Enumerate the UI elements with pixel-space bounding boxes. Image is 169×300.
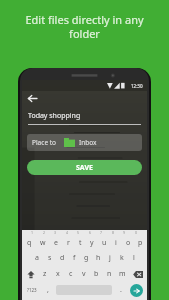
button[interactable]: o bbox=[122, 235, 134, 250]
button[interactable]: , bbox=[41, 282, 54, 298]
button[interactable]: l bbox=[128, 250, 140, 266]
staticText: i bbox=[115, 238, 117, 248]
button[interactable]: u bbox=[98, 235, 110, 250]
staticText: f bbox=[73, 253, 76, 263]
button[interactable]: . bbox=[114, 282, 127, 298]
staticText: Edit files directly in any folder bbox=[14, 12, 155, 41]
staticText: 3 bbox=[54, 230, 57, 235]
button[interactable]: a bbox=[30, 250, 43, 266]
staticText: v bbox=[82, 269, 86, 279]
button[interactable]: r bbox=[62, 235, 74, 250]
button[interactable]: ?123 bbox=[23, 282, 41, 298]
staticText: z bbox=[43, 269, 47, 279]
button[interactable]: b bbox=[90, 266, 103, 282]
staticText: a bbox=[35, 253, 39, 263]
staticText: 12:30 bbox=[131, 83, 143, 89]
button[interactable]: Enter bbox=[130, 284, 143, 297]
staticText: p bbox=[138, 238, 143, 248]
staticText: 6 bbox=[89, 230, 92, 235]
button[interactable]: q bbox=[23, 235, 36, 250]
staticText: s bbox=[48, 253, 52, 263]
staticText: k bbox=[120, 253, 124, 263]
staticText: l bbox=[133, 253, 135, 263]
staticText: o bbox=[126, 238, 131, 248]
staticText: 1 bbox=[31, 230, 34, 235]
staticText: 7 bbox=[100, 230, 103, 235]
staticText: u bbox=[102, 238, 107, 248]
button[interactable]: Place to bbox=[27, 134, 142, 151]
staticText: 5 bbox=[77, 230, 80, 235]
staticText: b bbox=[94, 269, 99, 279]
button[interactable]: s bbox=[43, 250, 56, 266]
button[interactable]: k bbox=[116, 250, 128, 266]
button[interactable]: Backspace bbox=[129, 266, 146, 282]
button[interactable]: Shift bbox=[23, 266, 39, 282]
staticText: 9 bbox=[123, 230, 126, 235]
button[interactable]: c bbox=[64, 266, 77, 282]
staticText: 0 bbox=[135, 230, 138, 235]
button[interactable]: i bbox=[110, 235, 122, 250]
button[interactable]: j bbox=[104, 250, 116, 266]
button[interactable]: h bbox=[92, 250, 104, 266]
staticText: r bbox=[67, 238, 70, 248]
staticText: q bbox=[27, 238, 32, 248]
button[interactable]: n bbox=[103, 266, 116, 282]
staticText: 8 bbox=[112, 230, 115, 235]
button[interactable]: e bbox=[49, 235, 62, 250]
staticText: n bbox=[107, 269, 112, 279]
button[interactable]: v bbox=[77, 266, 90, 282]
staticText: Today shopping bbox=[28, 111, 81, 121]
staticText: . bbox=[120, 285, 122, 295]
staticText: j bbox=[109, 253, 111, 263]
staticText: e bbox=[54, 238, 58, 248]
staticText: SAVE bbox=[76, 163, 93, 173]
button[interactable]: d bbox=[56, 250, 68, 266]
button[interactable]: Back bbox=[26, 92, 38, 104]
button[interactable]: y bbox=[86, 235, 98, 250]
staticText: Place to bbox=[32, 138, 57, 147]
button[interactable]: SAVE bbox=[27, 160, 142, 175]
button[interactable]: x bbox=[51, 266, 64, 282]
staticText: 2 bbox=[43, 230, 46, 235]
staticText: h bbox=[96, 253, 101, 263]
staticText: t bbox=[79, 238, 82, 248]
button[interactable]: z bbox=[39, 266, 51, 282]
staticText: w bbox=[40, 238, 46, 248]
button[interactable]: w bbox=[36, 235, 49, 250]
staticText: y bbox=[90, 238, 94, 248]
staticText: c bbox=[69, 269, 73, 279]
staticText: Inbox bbox=[79, 138, 97, 147]
button[interactable]: m bbox=[116, 266, 129, 282]
button[interactable]: f bbox=[68, 250, 80, 266]
staticText: ?123 bbox=[27, 287, 37, 293]
staticText: , bbox=[47, 285, 49, 295]
staticText: x bbox=[56, 269, 60, 279]
button[interactable]: t bbox=[74, 235, 86, 250]
staticText: m bbox=[119, 269, 126, 279]
staticText: g bbox=[84, 253, 89, 263]
button[interactable]: g bbox=[80, 250, 92, 266]
staticText: d bbox=[60, 253, 65, 263]
staticText: 4 bbox=[66, 230, 69, 235]
button[interactable]: p bbox=[134, 235, 146, 250]
